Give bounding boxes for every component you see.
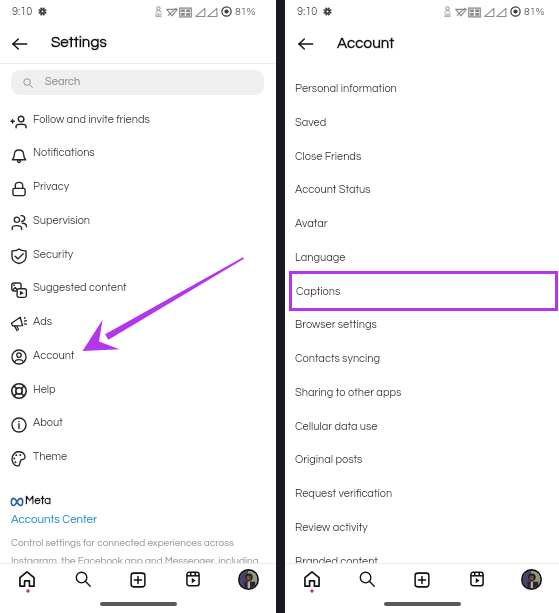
button[interactable]: Home — [295, 565, 329, 599]
staticText: Account — [337, 36, 395, 52]
staticText: Avatar — [295, 218, 328, 229]
staticText: Request verification — [295, 488, 393, 499]
staticText: Captions — [296, 286, 341, 297]
button[interactable] — [285, 105, 559, 139]
staticText: 81% — [524, 6, 545, 17]
staticText: Search — [45, 76, 81, 87]
button[interactable] — [285, 172, 559, 206]
button[interactable] — [0, 239, 276, 273]
staticText: Supervision — [33, 215, 91, 226]
button[interactable] — [285, 307, 559, 341]
button[interactable]: Reels — [176, 565, 210, 599]
button[interactable]: Captions — [289, 271, 558, 311]
button[interactable] — [0, 104, 276, 138]
button[interactable]: Search — [350, 565, 384, 599]
staticText: Sharing to other apps — [295, 387, 402, 398]
staticText: Close Friends — [295, 151, 362, 162]
staticText: Control settings for connected experienc… — [11, 538, 259, 566]
staticText: Contacts syncing — [295, 353, 381, 364]
staticText: Saved — [295, 117, 327, 128]
staticText: Branded content — [295, 556, 378, 567]
staticText: Ads — [33, 316, 53, 327]
button[interactable] — [285, 206, 559, 240]
button[interactable] — [0, 408, 276, 442]
staticText: Meta — [25, 495, 52, 507]
staticText: Follow and invite friends — [33, 114, 150, 125]
staticText: Account Status — [295, 184, 371, 195]
staticText: Review activity — [295, 522, 368, 533]
button[interactable] — [0, 205, 276, 239]
button[interactable]: Reels — [460, 565, 494, 599]
staticText: Browser settings — [295, 319, 377, 330]
button[interactable]: Accounts Center — [11, 514, 97, 526]
button[interactable] — [285, 240, 559, 274]
staticText: Language — [295, 252, 346, 263]
button[interactable] — [0, 307, 276, 341]
staticText: 9:10 — [12, 6, 33, 17]
staticText: Cellular data use — [295, 421, 378, 432]
button[interactable] — [0, 273, 276, 307]
button[interactable]: Profile — [515, 565, 549, 599]
staticText: Notifications — [33, 147, 95, 158]
button[interactable] — [285, 510, 559, 544]
button[interactable] — [285, 375, 559, 409]
button[interactable]: Create — [121, 565, 155, 599]
button[interactable] — [285, 476, 559, 510]
staticText: 9:10 — [297, 6, 318, 17]
staticText: Theme — [33, 451, 68, 462]
button[interactable] — [285, 544, 559, 578]
button[interactable]: Back — [3, 28, 35, 60]
button[interactable] — [285, 341, 559, 375]
button[interactable]: Back — [289, 28, 321, 60]
staticText: Account — [33, 350, 75, 361]
button[interactable] — [0, 172, 276, 206]
button[interactable] — [0, 442, 276, 476]
button[interactable]: Profile — [231, 565, 265, 599]
button[interactable] — [285, 409, 559, 443]
button[interactable]: Create — [405, 565, 439, 599]
button[interactable] — [0, 138, 276, 172]
staticText: Settings — [51, 35, 107, 51]
staticText: About — [33, 417, 63, 428]
button[interactable] — [285, 71, 559, 105]
button[interactable]: Search — [66, 565, 100, 599]
staticText: 81% — [235, 6, 256, 17]
staticText: Security — [33, 249, 74, 260]
button[interactable]: Home — [11, 565, 45, 599]
staticText: Personal information — [295, 83, 397, 94]
button[interactable] — [0, 374, 276, 408]
staticText: Privacy — [33, 181, 70, 192]
staticText: Help — [33, 384, 56, 395]
button[interactable] — [0, 340, 276, 374]
button[interactable]: Search — [11, 70, 264, 95]
staticText: Original posts — [295, 454, 363, 465]
staticText: Suggested content — [33, 282, 127, 293]
button[interactable] — [285, 442, 559, 476]
button[interactable] — [285, 139, 559, 173]
